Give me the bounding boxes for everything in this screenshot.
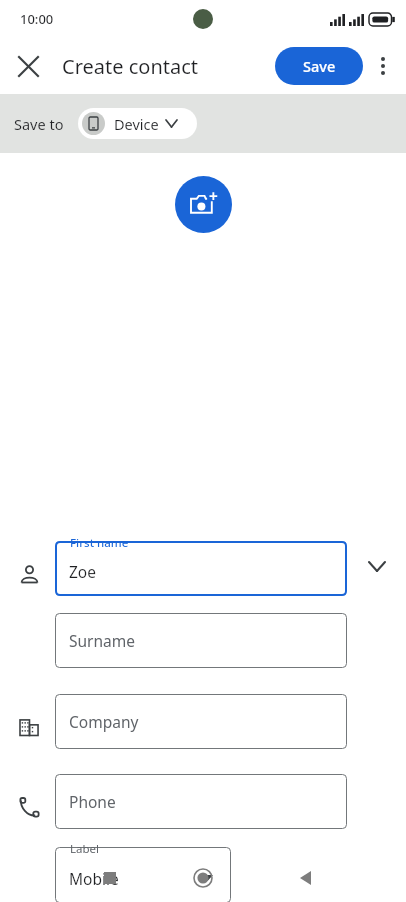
staticText: Save xyxy=(303,56,336,76)
button[interactable]: Add photo xyxy=(175,176,232,233)
button[interactable]: Home xyxy=(182,857,224,899)
button[interactable]: Save xyxy=(275,47,363,85)
button[interactable]: Close xyxy=(8,46,48,86)
button[interactable]: More options xyxy=(364,47,402,85)
staticText: Label xyxy=(70,841,100,857)
button[interactable]: Label xyxy=(55,847,231,902)
button[interactable]: Surname xyxy=(55,613,347,668)
staticText: Device xyxy=(114,114,159,134)
staticText: 10:00 xyxy=(20,10,54,28)
staticText: Save to xyxy=(14,114,64,134)
button[interactable]: Phone xyxy=(55,774,347,829)
staticText: Create contact xyxy=(62,53,199,80)
staticText: Phone xyxy=(69,791,116,812)
staticText: Mobile xyxy=(69,868,119,889)
button[interactable]: First name xyxy=(55,541,347,596)
button[interactable]: Recent apps xyxy=(89,857,131,899)
button[interactable]: Expand name fields xyxy=(358,547,396,585)
button[interactable]: Company xyxy=(55,694,347,749)
button[interactable]: Device xyxy=(78,108,197,139)
staticText: Company xyxy=(69,711,139,732)
staticText: Zoe xyxy=(69,561,96,582)
button[interactable]: Back xyxy=(284,857,326,899)
staticText: First name xyxy=(70,535,129,551)
staticText: Surname xyxy=(69,630,135,651)
